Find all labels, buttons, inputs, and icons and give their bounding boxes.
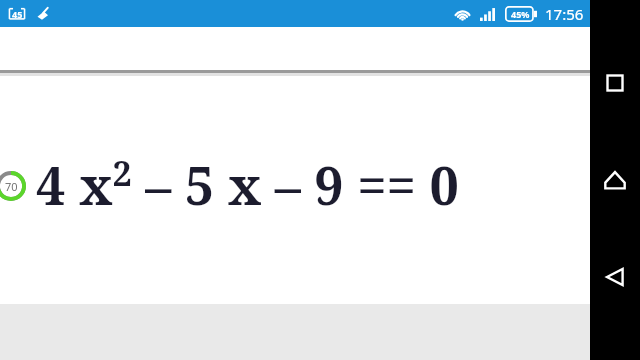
button[interactable]: Back bbox=[594, 256, 636, 298]
other: Progress 70 percent bbox=[0, 171, 26, 201]
staticText: 45 bbox=[12, 8, 23, 20]
staticText: 4 x2 – 5 x – 9 == 0 bbox=[36, 149, 459, 220]
staticText: 70 bbox=[5, 179, 18, 194]
button[interactable]: Home bbox=[594, 159, 636, 201]
staticText: 17:56 bbox=[545, 4, 584, 24]
button[interactable]: Recent apps bbox=[594, 62, 636, 104]
button[interactable]: Progress 70 percent bbox=[0, 76, 590, 304]
staticText: 45% bbox=[511, 8, 530, 20]
